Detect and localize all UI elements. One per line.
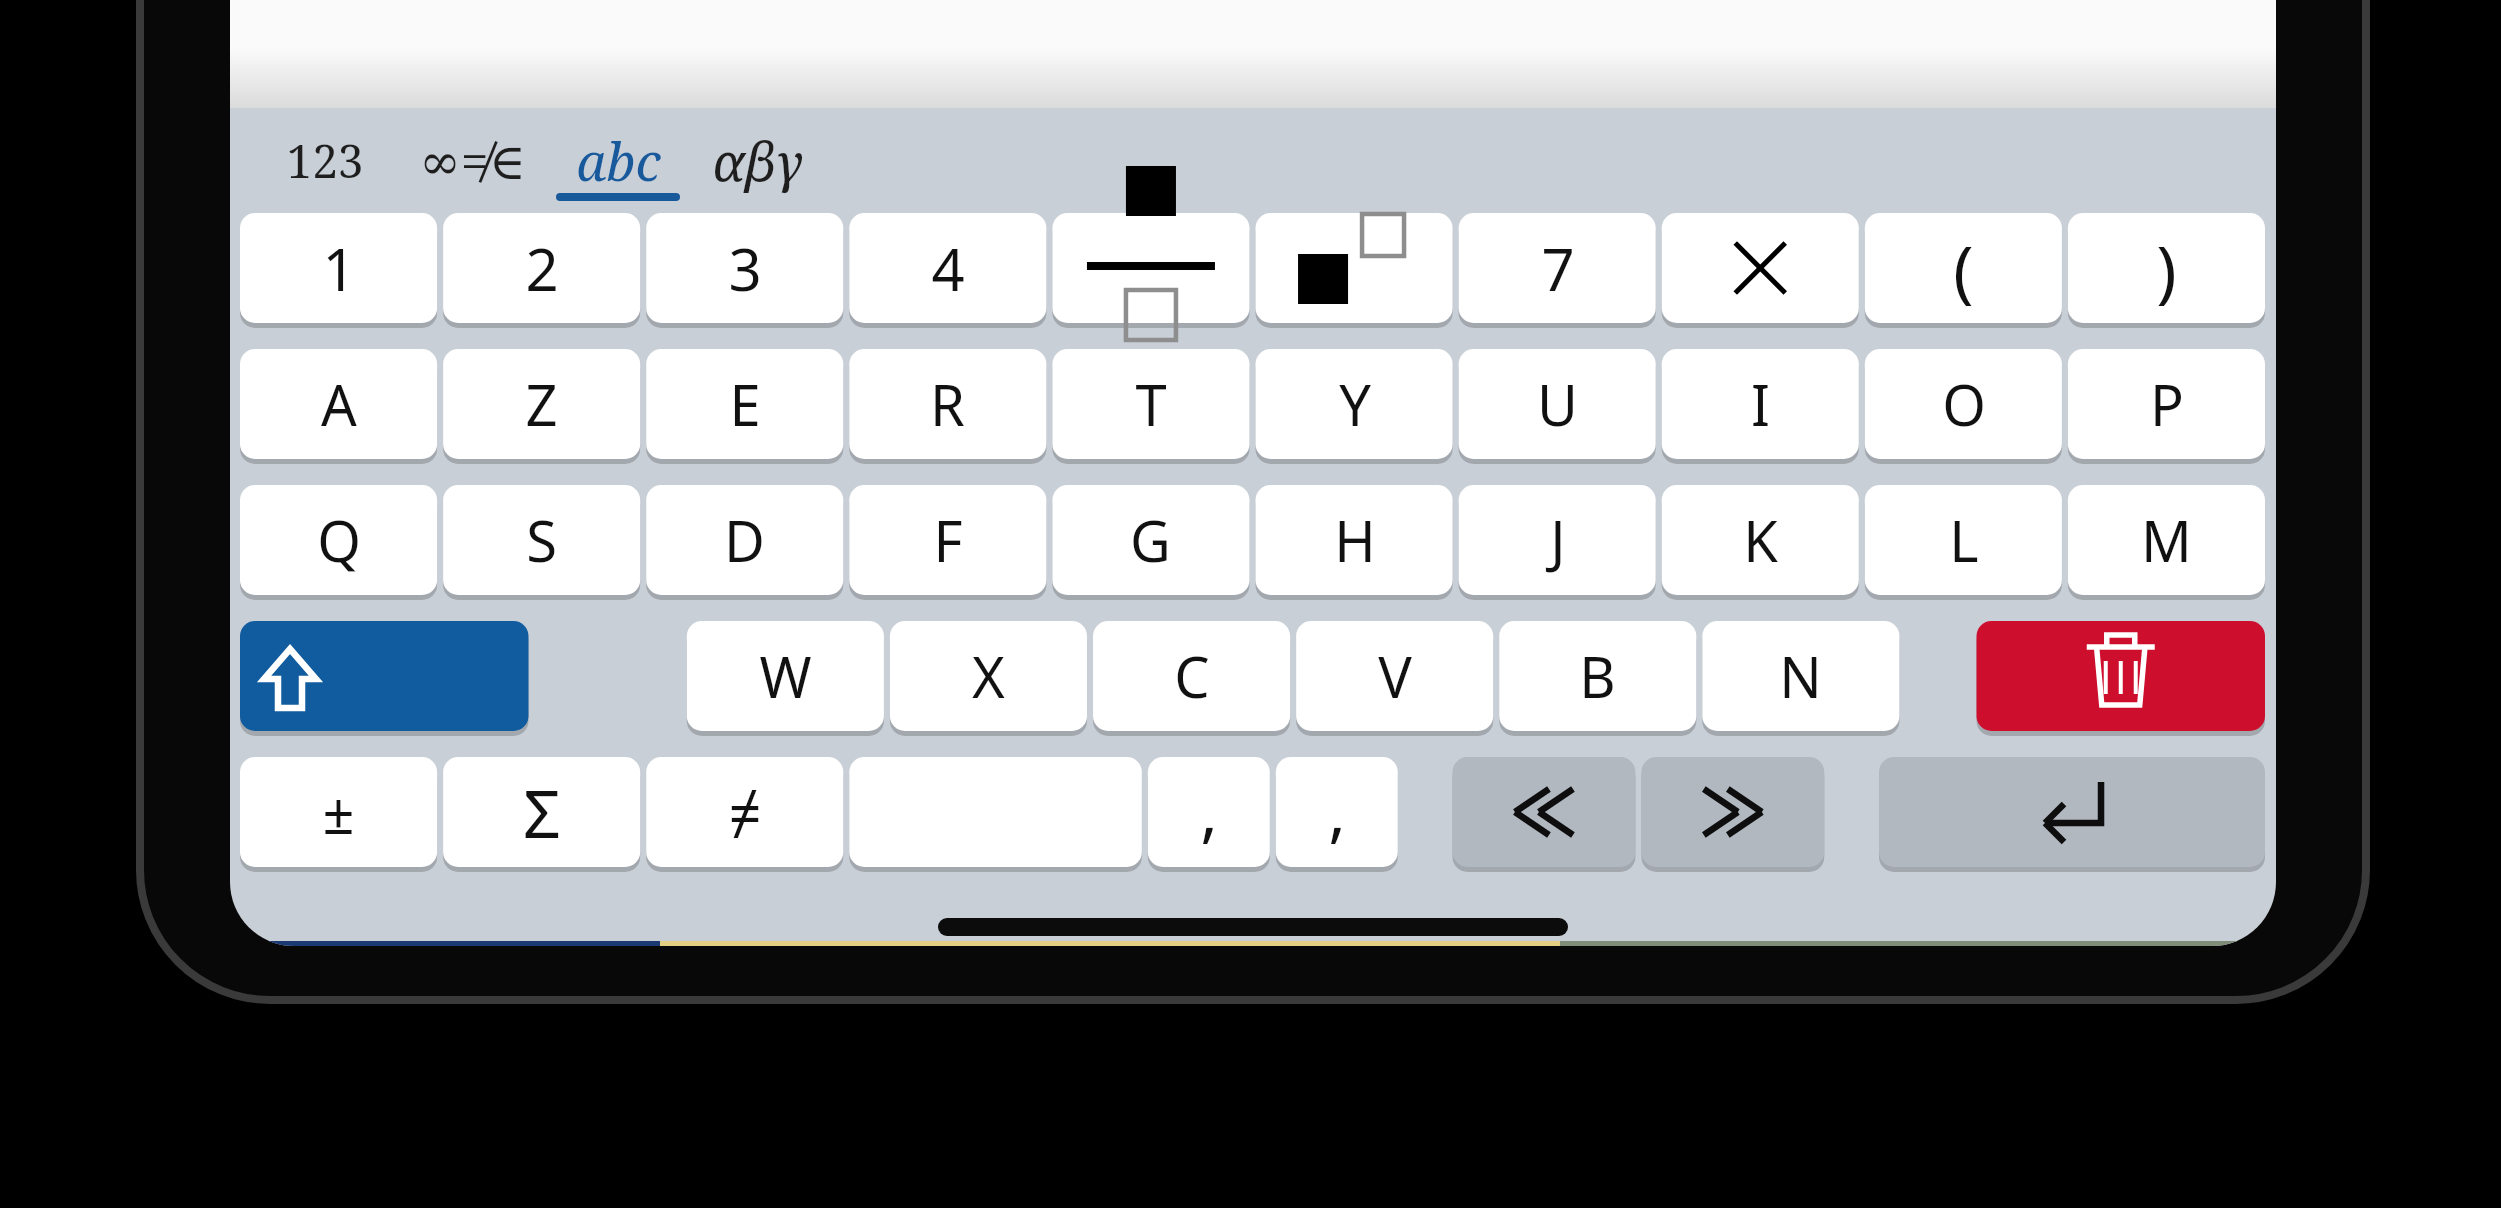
button[interactable]: Previous <box>1453 757 1636 867</box>
staticText: 3 <box>728 229 762 308</box>
button[interactable]: Space <box>849 757 1142 867</box>
button[interactable]: V <box>1296 621 1493 731</box>
staticText: M <box>2141 502 2192 578</box>
button[interactable]: M <box>2068 485 2265 595</box>
staticText: A <box>321 366 357 442</box>
button[interactable]: L <box>1865 485 2062 595</box>
staticText: T <box>1135 366 1167 442</box>
staticText: abc <box>576 125 661 196</box>
staticText: W <box>759 638 812 714</box>
staticText: D <box>724 502 765 578</box>
staticText: I <box>1751 366 1770 442</box>
staticText: ∞≠∈ <box>419 126 526 194</box>
button[interactable]: J <box>1459 485 1656 595</box>
staticText: ≠ <box>728 773 762 852</box>
staticText: 1 <box>322 229 356 308</box>
button[interactable]: ≠ <box>646 757 843 867</box>
button[interactable]: ± <box>240 757 437 867</box>
staticText: αβγ <box>712 125 803 196</box>
staticText: X <box>972 638 1005 714</box>
button[interactable]: ) <box>2068 213 2265 323</box>
button[interactable]: E <box>646 349 843 459</box>
staticText: S <box>526 502 557 578</box>
button[interactable]: A <box>240 349 437 459</box>
button[interactable]: 2 <box>443 213 640 323</box>
button[interactable]: Σ <box>443 757 640 867</box>
button[interactable]: ∞≠∈ <box>392 124 552 196</box>
button[interactable]: Shift <box>240 621 528 731</box>
button[interactable]: Exponent <box>1256 213 1453 323</box>
staticText: C <box>1174 638 1210 714</box>
button[interactable]: Q <box>240 485 437 595</box>
button[interactable]: W <box>687 621 884 731</box>
button[interactable]: N <box>1702 621 1899 731</box>
staticText: P <box>2150 366 2184 442</box>
staticText: 123 <box>286 129 364 192</box>
button[interactable]: Delete <box>1977 621 2265 731</box>
button[interactable]: Multiply <box>1662 213 1859 323</box>
staticText: Z <box>525 366 558 442</box>
staticText: E <box>729 366 761 442</box>
staticText: L <box>1949 502 1979 578</box>
button[interactable]: T <box>1052 349 1249 459</box>
button[interactable]: B <box>1499 621 1696 731</box>
button[interactable]: H <box>1256 485 1453 595</box>
staticText: Q <box>317 502 361 578</box>
button[interactable]: Z <box>443 349 640 459</box>
button[interactable]: 3 <box>646 213 843 323</box>
staticText: ± <box>322 774 355 850</box>
button[interactable]: X <box>890 621 1087 731</box>
staticText: H <box>1334 502 1376 578</box>
staticText: 7 <box>1541 229 1575 308</box>
button[interactable]: ( <box>1865 213 2062 323</box>
button[interactable]: abc <box>538 124 698 196</box>
button[interactable]: Fraction <box>1052 213 1249 323</box>
button[interactable]: U <box>1459 349 1656 459</box>
button[interactable]: F <box>849 485 1046 595</box>
button[interactable]: R <box>849 349 1046 459</box>
staticText: B <box>1579 638 1616 714</box>
button[interactable]: 123 <box>245 124 405 196</box>
staticText: R <box>930 366 965 442</box>
button[interactable]: Y <box>1256 349 1453 459</box>
staticText: 2 <box>525 229 559 308</box>
button[interactable]: αβγ <box>677 124 837 196</box>
staticText: Y <box>1339 366 1371 442</box>
staticText: N <box>1779 638 1822 714</box>
staticText: U <box>1537 366 1578 442</box>
button[interactable]: K <box>1662 485 1859 595</box>
staticText: K <box>1743 502 1778 578</box>
button[interactable]: , <box>1148 757 1270 867</box>
button[interactable]: I <box>1662 349 1859 459</box>
staticText: O <box>1942 366 1986 442</box>
staticText: J <box>1550 502 1566 578</box>
staticText: F <box>933 502 963 578</box>
button[interactable]: S <box>443 485 640 595</box>
staticText: ( <box>1953 222 1974 315</box>
staticText: , <box>1200 765 1218 855</box>
staticText: G <box>1130 502 1171 578</box>
staticText: 4 <box>931 229 965 308</box>
button[interactable]: C <box>1093 621 1290 731</box>
button[interactable]: G <box>1052 485 1249 595</box>
button[interactable]: , <box>1276 757 1398 867</box>
staticText: ) <box>2156 222 2177 315</box>
button[interactable]: O <box>1865 349 2062 459</box>
staticText: , <box>1328 765 1346 855</box>
staticText: Σ <box>523 767 561 857</box>
button[interactable]: Enter <box>1879 757 2265 867</box>
button[interactable]: 4 <box>849 213 1046 323</box>
button[interactable]: D <box>646 485 843 595</box>
button[interactable]: 7 <box>1459 213 1656 323</box>
staticText: V <box>1378 638 1412 714</box>
button[interactable]: P <box>2068 349 2265 459</box>
button[interactable]: 1 <box>240 213 437 323</box>
button[interactable]: Next <box>1641 757 1824 867</box>
